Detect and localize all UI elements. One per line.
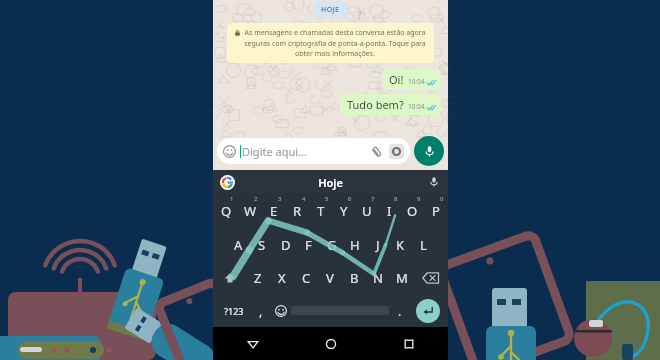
button[interactable]: Y xyxy=(332,194,355,228)
button[interactable]: Z xyxy=(246,261,270,294)
staticText: . xyxy=(398,303,402,319)
staticText: H xyxy=(350,236,360,254)
staticText: 4 xyxy=(302,195,306,203)
staticText: W xyxy=(244,202,257,220)
staticText: 0 xyxy=(440,195,444,203)
button[interactable]: F xyxy=(297,228,320,261)
staticText: Hoje xyxy=(235,175,426,190)
button[interactable]: X xyxy=(270,261,294,294)
staticText: R xyxy=(293,202,302,220)
button[interactable]: , xyxy=(251,294,270,327)
staticText: 9 xyxy=(417,195,421,203)
staticText: Q xyxy=(221,202,232,220)
button[interactable]: Shift xyxy=(214,261,246,294)
button[interactable]: L xyxy=(412,228,435,261)
button[interactable]: Recentes xyxy=(370,327,448,360)
button[interactable]: Emoji xyxy=(270,294,291,327)
button[interactable]: N xyxy=(366,261,390,294)
button[interactable]: M xyxy=(390,261,414,294)
button[interactable]: B xyxy=(342,261,366,294)
staticText: Digite aqui... xyxy=(242,144,370,159)
staticText: C xyxy=(302,269,311,287)
staticText: 5 xyxy=(325,195,329,203)
staticText: As mensagens e chamadas desta conversa e… xyxy=(243,28,427,58)
staticText: L xyxy=(420,236,427,254)
staticText: A xyxy=(234,236,243,254)
staticText: K xyxy=(396,236,405,254)
button[interactable]: I xyxy=(378,194,401,228)
button[interactable]: K xyxy=(389,228,412,261)
staticText: J xyxy=(376,236,380,254)
staticText: T xyxy=(317,202,325,220)
button[interactable]: P xyxy=(424,194,447,228)
button[interactable]: Anexar xyxy=(370,145,383,158)
staticText: ?123 xyxy=(224,305,244,317)
staticText: HOJE xyxy=(321,5,340,15)
button[interactable]: W xyxy=(238,194,262,228)
staticText: 3 xyxy=(278,195,282,203)
button[interactable]: A xyxy=(226,228,250,261)
button[interactable]: D xyxy=(274,228,297,261)
button[interactable]: G xyxy=(320,228,343,261)
staticText: 10:04 xyxy=(408,102,425,111)
staticText: X xyxy=(278,269,286,287)
button[interactable]: C xyxy=(294,261,318,294)
staticText: Oi! xyxy=(389,72,404,87)
button[interactable]: HOJE xyxy=(314,2,347,18)
staticText: Y xyxy=(340,202,348,220)
button[interactable]: Digite aqui... xyxy=(217,138,410,164)
staticText: Z xyxy=(254,269,262,287)
button[interactable]: Início xyxy=(292,327,370,360)
staticText: B xyxy=(350,269,359,287)
button[interactable]: Câmera xyxy=(389,144,404,159)
button[interactable]: As mensagens e chamadas desta conversa e… xyxy=(227,23,434,63)
button[interactable]: Pesquisa Google xyxy=(219,174,235,190)
staticText: S xyxy=(258,236,266,254)
button[interactable]: T xyxy=(309,194,332,228)
button[interactable]: E xyxy=(262,194,286,228)
button[interactable]: V xyxy=(318,261,342,294)
staticText: E xyxy=(270,202,278,220)
staticText: 8 xyxy=(394,195,398,203)
staticText: M xyxy=(396,269,408,287)
button[interactable]: U xyxy=(355,194,378,228)
button[interactable]: O xyxy=(401,194,424,228)
staticText: , xyxy=(259,303,263,319)
staticText: U xyxy=(362,202,372,220)
button[interactable]: Apagar xyxy=(414,261,447,294)
button[interactable]: Ditado por voz xyxy=(426,174,442,190)
staticText: 7 xyxy=(371,195,375,203)
staticText: P xyxy=(432,202,440,220)
button[interactable]: Q xyxy=(214,194,238,228)
button[interactable]: Enter xyxy=(416,299,440,323)
staticText: 6 xyxy=(348,195,352,203)
button[interactable]: Oi! xyxy=(382,69,441,90)
staticText: 1 xyxy=(230,195,234,203)
staticText: N xyxy=(373,269,383,287)
staticText: 10:04 xyxy=(408,77,425,86)
staticText: D xyxy=(281,236,291,254)
button[interactable]: . xyxy=(389,294,410,327)
button[interactable]: Espaço xyxy=(291,302,389,319)
button[interactable]: Tudo bem? xyxy=(340,94,441,115)
button[interactable]: Gravar áudio xyxy=(414,136,444,166)
button[interactable]: H xyxy=(343,228,366,261)
button[interactable]: J xyxy=(366,228,389,261)
button[interactable]: Voltar xyxy=(213,327,292,360)
staticText: I xyxy=(387,202,392,220)
staticText: Tudo bem? xyxy=(347,97,404,112)
staticText: G xyxy=(327,236,337,254)
button[interactable]: S xyxy=(250,228,274,261)
staticText: O xyxy=(407,202,418,220)
staticText: F xyxy=(305,236,312,254)
button[interactable]: R xyxy=(286,194,309,228)
staticText: V xyxy=(326,269,334,287)
staticText: 2 xyxy=(254,195,258,203)
button[interactable]: ?123 xyxy=(216,294,251,327)
